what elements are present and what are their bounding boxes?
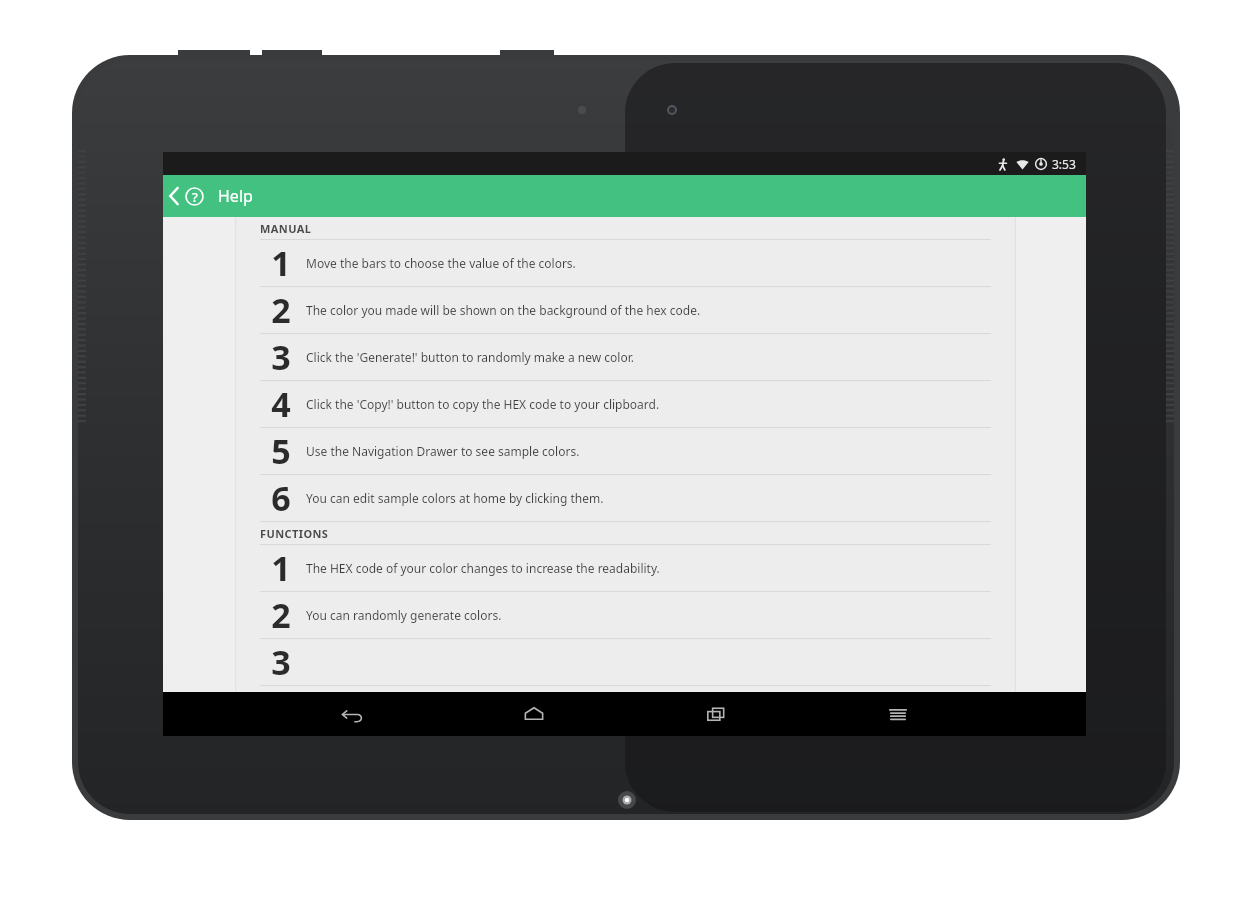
staticText: Move the bars to choose the value of the… xyxy=(306,255,576,271)
staticText: 4 xyxy=(271,381,291,427)
button[interactable]: Recent apps xyxy=(690,692,742,736)
staticText: 5 xyxy=(271,428,291,474)
button[interactable]: Home xyxy=(508,692,560,736)
button[interactable]: 2 xyxy=(235,287,1016,334)
button[interactable]: 4 xyxy=(235,381,1016,428)
button[interactable]: Back xyxy=(326,692,378,736)
button[interactable]: Navigate up, Help xyxy=(163,175,212,217)
button[interactable]: 1 xyxy=(235,545,1016,592)
staticText: MANUAL xyxy=(260,221,312,236)
staticText: You can randomly generate colors. xyxy=(306,607,502,623)
staticText: 1 xyxy=(271,240,291,286)
staticText: Click the 'Generate!' button to randomly… xyxy=(306,349,634,365)
staticText: 3 xyxy=(271,334,291,380)
staticText: 3 xyxy=(271,639,291,685)
staticText: 2 xyxy=(271,287,291,333)
staticText: You can edit sample colors at home by cl… xyxy=(306,490,604,506)
staticText: 2 xyxy=(271,592,291,638)
staticText: 1 xyxy=(271,545,291,591)
button[interactable]: 2 xyxy=(235,592,1016,639)
staticText: 6 xyxy=(271,475,291,521)
button[interactable]: Menu xyxy=(872,692,924,736)
button[interactable]: 3 xyxy=(235,334,1016,381)
staticText: The HEX code of your color changes to in… xyxy=(306,560,660,576)
staticText: 3:53 xyxy=(1052,156,1076,172)
button[interactable]: 5 xyxy=(235,428,1016,475)
staticText: Click the 'Copy!' button to copy the HEX… xyxy=(306,396,660,412)
staticText: Use the Navigation Drawer to see sample … xyxy=(306,443,580,459)
staticText: Help xyxy=(218,185,253,207)
staticText: FUNCTIONS xyxy=(260,526,329,541)
staticText: The color you made will be shown on the … xyxy=(306,302,701,318)
staticText: ? xyxy=(192,188,198,206)
button[interactable]: 1 xyxy=(235,240,1016,287)
button[interactable]: 3 xyxy=(235,639,1016,686)
button[interactable]: 6 xyxy=(235,475,1016,522)
